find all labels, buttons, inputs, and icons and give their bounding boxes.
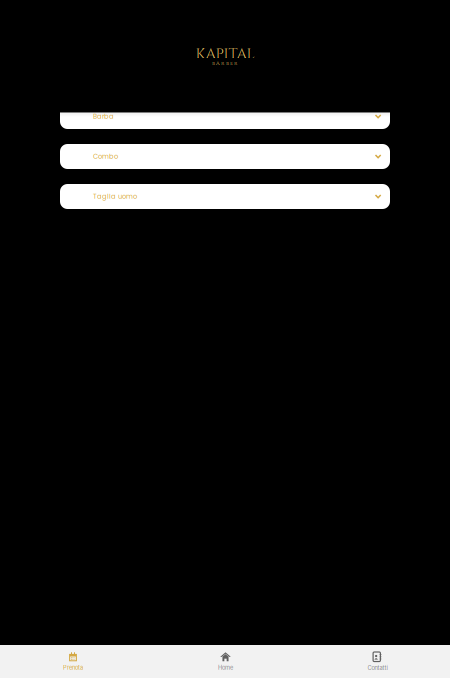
button[interactable]: Barba bbox=[60, 104, 390, 129]
button[interactable]: Taglia uomo bbox=[60, 184, 390, 209]
staticText: Taglia uomo bbox=[93, 192, 137, 201]
staticText: Barba bbox=[93, 112, 114, 121]
button[interactable]: Combo bbox=[60, 144, 390, 169]
button[interactable]: Prenota bbox=[0, 645, 146, 678]
staticText: Contatti bbox=[367, 664, 387, 671]
staticText: Combo bbox=[93, 152, 118, 161]
staticText: B A R B E R bbox=[212, 60, 238, 67]
staticText: KAPITAL bbox=[195, 44, 254, 64]
staticText: Home bbox=[218, 664, 233, 671]
staticText: Prenota bbox=[63, 664, 83, 671]
button[interactable]: Contatti bbox=[305, 645, 450, 678]
button[interactable]: Home bbox=[146, 645, 305, 678]
